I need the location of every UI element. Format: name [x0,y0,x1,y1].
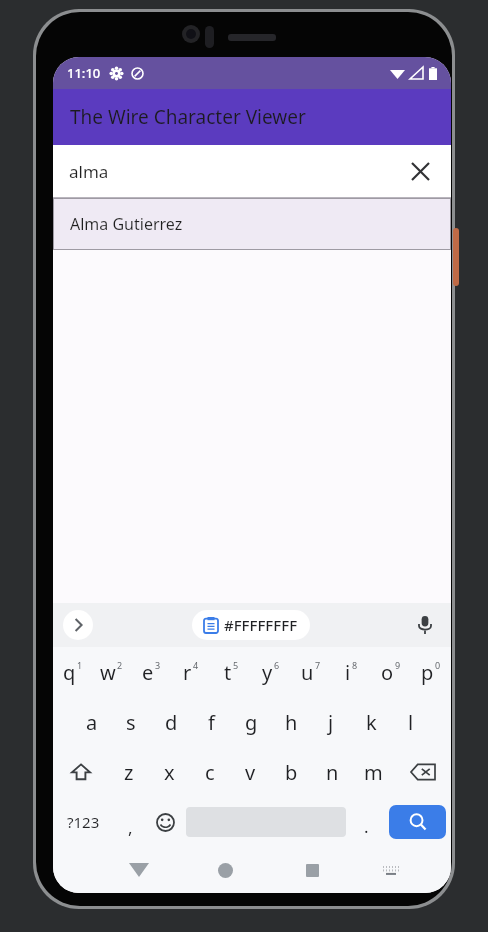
staticText: 0 [435,659,441,671]
button[interactable]: More suggestions [63,610,93,640]
button[interactable]: Home [182,847,269,893]
button[interactable]: n [312,747,353,797]
staticText: 9 [395,659,401,671]
staticText: c [205,759,215,786]
button[interactable]: , [113,797,148,847]
button[interactable]: p [411,647,451,697]
staticText: 5 [233,659,239,671]
button[interactable]: x [149,747,189,797]
staticText: 11:10 [67,64,101,82]
staticText: Alma Gutierrez [70,213,183,235]
staticText: w [100,659,116,686]
button[interactable]: Back [95,847,182,893]
staticText: 1 [77,659,83,671]
staticText: g [245,709,258,736]
button[interactable]: o [371,647,411,697]
button[interactable]: g [231,697,271,747]
staticText: p [421,659,434,686]
button[interactable]: b [271,747,312,797]
button[interactable]: Emoji [148,797,183,847]
button[interactable]: f [191,697,231,747]
button[interactable]: ?123 [53,797,113,847]
button[interactable]: u [291,647,331,697]
staticText: b [285,759,298,786]
staticText: s [126,709,136,736]
staticText: #FFFFFFFF [224,615,298,635]
staticText: l [408,709,414,736]
button[interactable]: c [189,747,230,797]
staticText: 6 [274,659,280,671]
button[interactable]: j [311,697,351,747]
staticText: ?123 [67,812,100,832]
staticText: q [63,659,76,686]
staticText: The Wire Character Viewer [70,104,306,130]
button[interactable]: a [72,697,111,747]
button[interactable]: i [331,647,371,697]
staticText: o [381,659,394,686]
button[interactable]: Clear search [403,154,437,188]
button[interactable]: Recent apps [269,847,356,893]
staticText: z [124,759,134,786]
staticText: x [164,759,175,786]
staticText: u [301,659,314,686]
button[interactable]: z [109,747,149,797]
button[interactable]: Voice input [409,609,441,641]
button[interactable]: l [391,697,431,747]
button[interactable]: d [151,697,191,747]
staticText: m [364,759,383,786]
button[interactable]: s [111,697,151,747]
staticText: alma [69,160,403,183]
button[interactable]: . [349,797,384,847]
button[interactable]: v [230,747,271,797]
button[interactable]: t [211,647,251,697]
button[interactable]: Backspace [394,747,451,797]
staticText: f [208,709,215,736]
button[interactable]: h [271,697,311,747]
staticText: e [142,659,154,686]
button[interactable]: Search [389,805,446,839]
staticText: j [328,709,334,736]
staticText: a [86,709,98,736]
staticText: y [262,659,273,686]
staticText: 7 [315,659,321,671]
staticText: d [165,709,178,736]
staticText: r [183,659,192,686]
staticText: n [326,759,339,786]
staticText: , [128,816,133,839]
button[interactable]: y [251,647,291,697]
staticText: 8 [352,659,358,671]
staticText: . [364,815,369,838]
button[interactable]: w [92,647,131,697]
button[interactable]: Switch keyboard [356,847,425,893]
button[interactable]: q [53,647,92,697]
button[interactable]: Alma Gutierrez [54,199,450,249]
staticText: v [245,759,256,786]
staticText: 2 [117,659,123,671]
button[interactable]: #FFFFFFFF [192,610,310,640]
staticText: i [345,659,351,686]
staticText: h [285,709,298,736]
button[interactable]: m [353,747,394,797]
staticText: 3 [155,659,161,671]
button[interactable]: Shift [53,747,109,797]
staticText: t [224,659,232,686]
staticText: 4 [193,659,199,671]
button[interactable]: k [351,697,391,747]
staticText: k [366,709,377,736]
button[interactable]: r [171,647,211,697]
button[interactable]: e [131,647,171,697]
